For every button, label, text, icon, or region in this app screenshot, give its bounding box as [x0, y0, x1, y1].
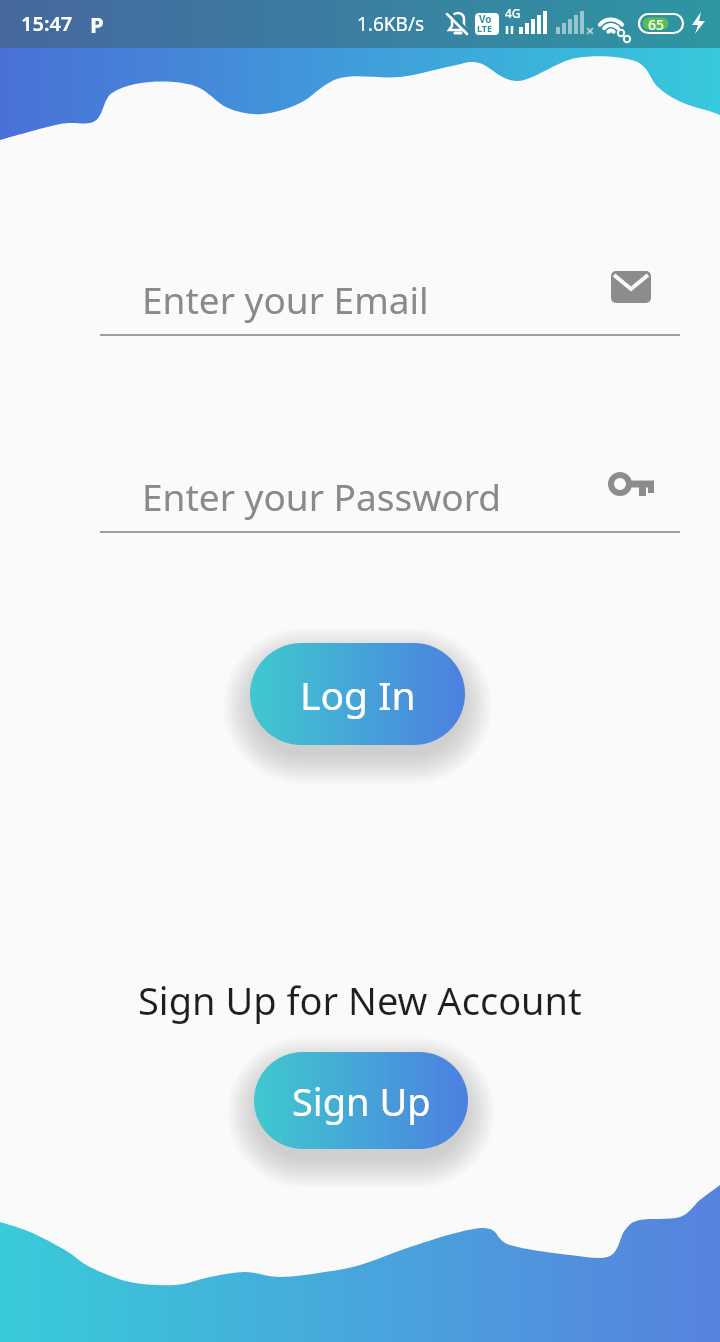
staticText: Enter your Email — [142, 274, 429, 324]
staticText: Vo — [479, 12, 492, 26]
staticText: 1.6KB/s — [357, 11, 425, 37]
button[interactable]: Log In — [250, 643, 465, 745]
button[interactable]: Sign Up — [254, 1052, 468, 1149]
staticText: LTE — [477, 22, 493, 34]
button[interactable]: Enter your Password — [100, 457, 680, 535]
staticText: Sign Up for New Account — [138, 974, 582, 1026]
button[interactable]: Enter your Email — [100, 260, 680, 338]
staticText: Log In — [300, 668, 416, 721]
staticText: Sign Up — [292, 1075, 431, 1127]
staticText: P — [90, 9, 104, 39]
staticText: 4G — [505, 5, 521, 21]
staticText: 15:47 — [21, 10, 73, 37]
staticText: 65 — [648, 15, 665, 34]
staticText: Enter your Password — [142, 471, 501, 521]
